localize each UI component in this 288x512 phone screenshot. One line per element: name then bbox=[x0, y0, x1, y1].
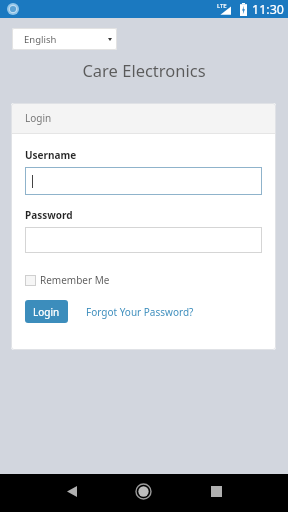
staticText: 11:30 bbox=[252, 1, 284, 18]
staticText: Login bbox=[33, 305, 60, 319]
staticText: Password bbox=[25, 208, 73, 222]
button[interactable]: Back bbox=[52, 472, 92, 510]
staticText: Care Electronics bbox=[0, 59, 288, 81]
staticText: Login bbox=[25, 111, 52, 125]
button[interactable]: Forgot Your Password? bbox=[86, 305, 194, 319]
staticText: Username bbox=[25, 148, 77, 162]
button[interactable] bbox=[25, 167, 262, 195]
staticText: LTE bbox=[217, 2, 227, 10]
button[interactable]: Remember Me bbox=[25, 273, 110, 287]
staticText: English bbox=[24, 33, 57, 46]
button[interactable]: Login bbox=[25, 300, 68, 323]
staticText: Remember Me bbox=[40, 273, 110, 287]
button[interactable] bbox=[25, 227, 262, 253]
button[interactable]: Home bbox=[123, 472, 163, 510]
button[interactable]: Recent apps bbox=[196, 472, 236, 510]
button[interactable]: English bbox=[12, 28, 117, 50]
